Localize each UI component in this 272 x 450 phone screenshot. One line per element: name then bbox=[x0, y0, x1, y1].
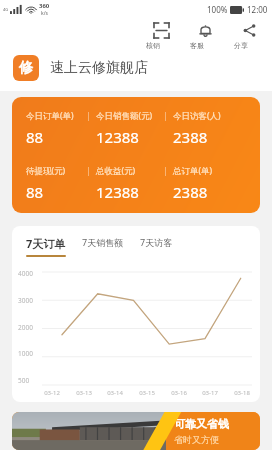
button[interactable]: 7天访客 bbox=[140, 236, 173, 250]
staticText: 待提现(元) bbox=[26, 165, 66, 177]
staticText: 总订单(单) bbox=[173, 165, 213, 177]
staticText: 修 bbox=[19, 59, 33, 77]
button[interactable]: 客服 bbox=[190, 21, 220, 52]
staticText: 03-18 bbox=[234, 389, 250, 397]
staticText: 速上云修旗舰店 bbox=[50, 59, 148, 77]
button[interactable]: 可靠又省钱 bbox=[12, 412, 260, 450]
staticText: 7天访客 bbox=[140, 236, 173, 248]
button[interactable]: 7天订单 bbox=[26, 236, 66, 259]
staticText: 今日访客(人) bbox=[173, 110, 221, 122]
staticText: 7天销售额 bbox=[82, 236, 124, 248]
staticText: 03-14 bbox=[107, 389, 123, 397]
staticText: 4000 bbox=[18, 269, 40, 278]
staticText: 500 bbox=[18, 376, 40, 385]
staticText: 2388 bbox=[173, 182, 208, 202]
staticText: 88 bbox=[26, 182, 44, 202]
staticText: 核销 bbox=[146, 41, 176, 50]
staticText: 省时又方便 bbox=[174, 434, 219, 445]
staticText: 03-17 bbox=[202, 389, 218, 397]
staticText: 7天订单 bbox=[26, 236, 66, 251]
button[interactable]: 7天销售额 bbox=[82, 236, 124, 250]
staticText: 1000 bbox=[18, 349, 40, 358]
staticText: 12388 bbox=[96, 182, 139, 202]
staticText: 100% bbox=[207, 4, 228, 15]
staticText: 4G bbox=[3, 7, 9, 12]
button[interactable]: 今日订单(单) bbox=[12, 97, 260, 213]
staticText: 2388 bbox=[173, 127, 208, 147]
staticText: 分享 bbox=[234, 41, 264, 50]
staticText: 总收益(元) bbox=[96, 165, 136, 177]
staticText: 12388 bbox=[96, 127, 139, 147]
staticText: 客服 bbox=[190, 41, 220, 50]
button[interactable]: 修 bbox=[13, 55, 148, 81]
staticText: 2000 bbox=[18, 323, 40, 332]
staticText: 360 bbox=[39, 2, 50, 10]
staticText: 12:00 bbox=[247, 4, 268, 15]
staticText: k/s bbox=[41, 10, 48, 17]
staticText: 可靠又省钱 bbox=[174, 417, 229, 431]
button[interactable]: 核销 bbox=[146, 21, 176, 52]
staticText: 03-16 bbox=[171, 389, 187, 397]
staticText: 今日销售额(元) bbox=[96, 110, 153, 122]
button[interactable]: 分享 bbox=[234, 21, 264, 52]
staticText: 03-15 bbox=[139, 389, 155, 397]
staticText: 03-12 bbox=[44, 389, 60, 397]
staticText: 3000 bbox=[18, 296, 40, 305]
staticText: 88 bbox=[26, 127, 44, 147]
staticText: 03-13 bbox=[76, 389, 92, 397]
staticText: 今日订单(单) bbox=[26, 110, 74, 122]
